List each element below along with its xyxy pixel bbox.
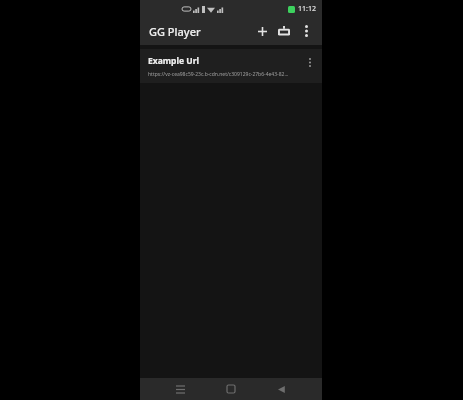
button[interactable]: Example Url [140,49,322,83]
staticText: GG Player [149,24,201,39]
button[interactable]: Home [220,378,242,400]
staticText: https://vz-cea98c59-23c.b-cdn.net/c30912… [148,71,289,78]
staticText: 11:12 [298,4,316,14]
button[interactable]: Recents [169,378,191,400]
button[interactable]: More options [295,20,317,42]
button[interactable]: Add [251,20,273,42]
button[interactable]: Cast [273,20,295,42]
staticText: Example Url [148,55,200,67]
button[interactable]: Item options [303,55,317,69]
button[interactable]: Back [271,378,293,400]
